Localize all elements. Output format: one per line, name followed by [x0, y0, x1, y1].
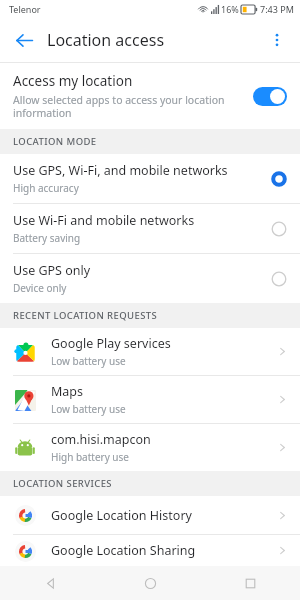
staticText: Google Location Sharing — [51, 542, 276, 559]
staticText: Google Location History — [51, 507, 276, 524]
staticText: Allow selected apps to access your locat… — [13, 93, 243, 120]
staticText: High accuracy — [13, 181, 79, 195]
staticText: Use Wi-Fi and mobile networks — [13, 212, 195, 229]
staticText: Location access — [47, 29, 165, 51]
staticText: RECENT LOCATION REQUESTS — [13, 309, 158, 322]
staticText: Low battery use — [51, 354, 126, 368]
staticText: Access my location — [13, 72, 133, 90]
staticText: Google Play services — [51, 335, 171, 352]
button[interactable]: Back — [0, 566, 100, 600]
button[interactable]: Maps — [0, 376, 300, 423]
button[interactable]: Use Wi-Fi and mobile networks — [0, 204, 300, 253]
button[interactable]: Access my location toggle — [253, 87, 287, 106]
staticText: Use GPS only — [13, 262, 91, 279]
staticText: 7:43 PM — [260, 3, 294, 15]
staticText: Low battery use — [51, 402, 126, 416]
staticText: Device only — [13, 281, 67, 295]
button[interactable]: Google Location Sharing — [0, 535, 300, 566]
staticText: Battery saving — [13, 231, 81, 245]
staticText: Maps — [51, 383, 84, 400]
staticText: 16% — [221, 3, 239, 15]
button[interactable]: com.hisi.mapcon — [0, 424, 300, 471]
button[interactable]: Recents — [200, 566, 300, 600]
staticText: Telenor — [9, 3, 41, 15]
button[interactable]: More options — [260, 23, 294, 57]
button[interactable]: Access my location — [0, 63, 300, 129]
staticText: Use GPS, Wi-Fi, and mobile networks — [13, 162, 228, 179]
button[interactable]: Google Play services — [0, 328, 300, 375]
button[interactable]: Google Location History — [0, 496, 300, 534]
button[interactable]: Home — [100, 566, 200, 600]
button[interactable]: Use GPS only — [0, 254, 300, 303]
button[interactable]: Back — [6, 22, 42, 58]
staticText: LOCATION SERVICES — [13, 477, 112, 490]
button[interactable]: Use GPS, Wi-Fi, and mobile networks — [0, 154, 300, 203]
staticText: High battery use — [51, 450, 129, 464]
staticText: LOCATION MODE — [13, 135, 97, 148]
staticText: com.hisi.mapcon — [51, 431, 151, 448]
